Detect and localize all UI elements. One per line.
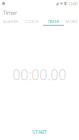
button[interactable]: TIMER: [43, 18, 64, 26]
button[interactable]: ALARM: [0, 18, 21, 26]
staticText: CLOCK: [25, 19, 39, 24]
staticText: 00:00.00: [12, 66, 66, 84]
button[interactable]: START: [0, 124, 79, 140]
staticText: START: [32, 128, 47, 136]
staticText: TIMER: [47, 19, 59, 24]
staticText: ALARM: [3, 19, 18, 24]
staticText: MORE: [65, 19, 77, 24]
button[interactable]: CLOCK: [21, 18, 43, 26]
button[interactable]: MORE: [64, 18, 79, 26]
staticText: Timer: [3, 9, 17, 16]
staticText: 12:00: [68, 1, 77, 6]
